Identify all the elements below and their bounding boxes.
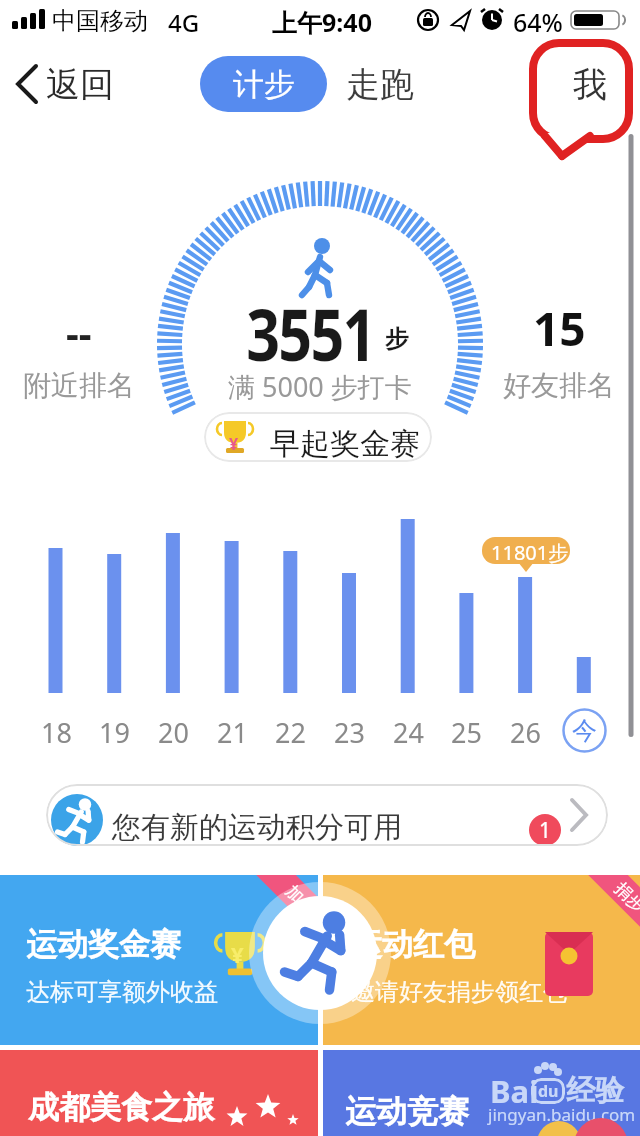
staticText: ¥ — [231, 939, 244, 969]
staticText: 18 — [41, 714, 72, 751]
staticText: 今 — [572, 715, 597, 746]
staticText: 步 — [385, 324, 409, 354]
button[interactable]: 25 — [436, 714, 496, 751]
staticText: 3551 — [246, 284, 375, 382]
button[interactable]: 运动竞赛 — [323, 1050, 640, 1136]
staticText: 运动奖金赛 — [26, 925, 181, 964]
staticText: 24 — [393, 714, 424, 751]
staticText: 经验 — [566, 1072, 624, 1109]
staticText: 返回 — [46, 63, 114, 106]
button[interactable]: 26 — [495, 714, 555, 751]
button[interactable]: 走跑 — [340, 56, 420, 112]
button[interactable]: 计步 — [200, 56, 327, 112]
button[interactable]: 23 — [319, 714, 379, 751]
staticText: 中国移动 — [52, 6, 148, 36]
button[interactable]: 18 — [26, 714, 86, 751]
staticText: 11801步 — [491, 539, 569, 566]
button[interactable]: 21 — [202, 714, 262, 751]
staticText: 15 — [533, 297, 586, 360]
staticText: 成都美食之旅 — [28, 1088, 214, 1127]
staticText: 23 — [334, 714, 365, 751]
staticText: 运动红包 — [351, 925, 475, 964]
staticText: 20 — [158, 714, 189, 751]
staticText: 4G — [168, 6, 200, 39]
staticText: 走跑 — [346, 63, 414, 106]
button[interactable]: 您有新的运动积分可用 — [46, 784, 608, 846]
staticText: 运动竞赛 — [345, 1092, 469, 1131]
button[interactable]: 我 — [560, 56, 620, 112]
staticText: jingyan.baidu.com — [488, 1103, 636, 1126]
staticText: 捐步 — [610, 878, 640, 917]
staticText: 21 — [217, 714, 248, 751]
staticText: -- — [66, 305, 92, 359]
staticText: 加步 — [281, 881, 318, 920]
staticText: 好友排名 — [503, 368, 615, 403]
staticText: 您有新的运动积分可用 — [112, 809, 402, 846]
button[interactable]: 24 — [378, 714, 438, 751]
button[interactable]: 运动红包 — [323, 875, 640, 1045]
staticText: 22 — [275, 714, 306, 751]
staticText: 早起奖金赛 — [270, 425, 420, 462]
button[interactable]: 成都美食之旅 — [0, 1050, 318, 1136]
button[interactable] — [263, 896, 377, 1010]
staticText: 19 — [99, 714, 130, 751]
staticText: 满 5000 步打卡 — [228, 368, 412, 405]
staticText: 26 — [510, 714, 541, 751]
staticText: Bai — [490, 1070, 539, 1112]
staticText: 邀请好友捐步领红包 — [351, 977, 567, 1007]
button[interactable]: 运动奖金赛 — [0, 875, 318, 1045]
staticText: 64% — [513, 5, 563, 39]
staticText: 达标可享额外收益 — [26, 977, 218, 1007]
staticText: ¥ — [229, 433, 239, 455]
staticText: 我 — [573, 63, 607, 106]
button[interactable]: 今 — [563, 709, 606, 752]
staticText: 计步 — [233, 65, 295, 104]
button[interactable]: 20 — [143, 714, 203, 751]
staticText: 附近排名 — [23, 368, 135, 403]
button[interactable]: ¥ — [204, 412, 432, 462]
button[interactable]: 返回 — [10, 56, 114, 112]
button[interactable]: 22 — [260, 714, 320, 751]
staticText: 上午9:40 — [272, 5, 372, 39]
button[interactable]: 19 — [84, 714, 144, 751]
staticText: 25 — [451, 714, 482, 751]
staticText: 1 — [539, 816, 552, 845]
staticText: du — [538, 1080, 559, 1102]
